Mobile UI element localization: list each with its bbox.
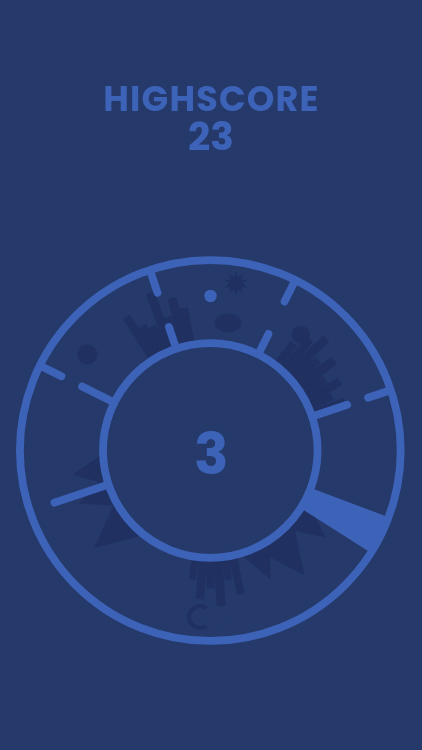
staticText: 3 (194, 414, 229, 494)
staticText: HIGHSCORE (103, 74, 320, 123)
staticText: 23 (188, 109, 234, 164)
button[interactable]: HIGHSCORE (0, 0, 422, 750)
